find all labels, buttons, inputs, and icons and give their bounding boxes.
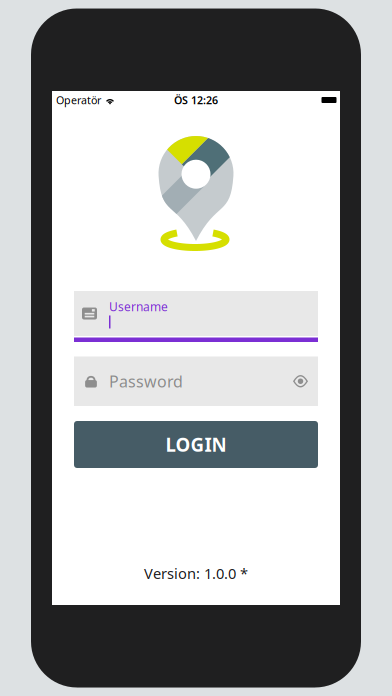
staticText: ÖS 12:26 <box>174 93 218 107</box>
staticText: Operatör <box>56 93 101 107</box>
staticText: Password <box>109 371 183 392</box>
staticText: Username <box>109 298 168 314</box>
staticText: Version: 1.0.0 * <box>144 563 248 583</box>
button[interactable]: Password <box>74 356 318 406</box>
button[interactable]: Username <box>74 291 318 342</box>
button[interactable]: LOGIN <box>74 421 318 468</box>
staticText: LOGIN <box>165 432 226 457</box>
